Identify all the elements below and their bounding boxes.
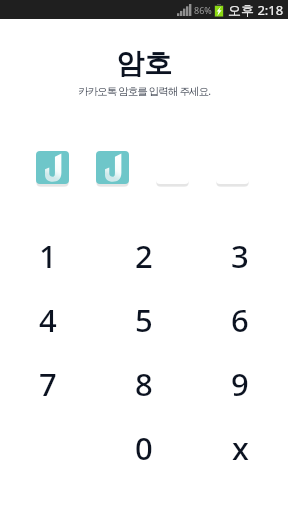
- button[interactable]: 9: [192, 352, 288, 416]
- staticText: 0: [135, 427, 153, 469]
- staticText: 2: [135, 235, 153, 277]
- button[interactable]: 3: [192, 224, 288, 288]
- button[interactable]: Delete: [192, 416, 288, 480]
- staticText: 1: [39, 235, 57, 277]
- button[interactable]: 1: [0, 224, 96, 288]
- staticText: 9: [231, 363, 249, 405]
- staticText: 8: [135, 363, 153, 405]
- button[interactable]: 6: [192, 288, 288, 352]
- staticText: 4: [39, 299, 57, 341]
- button[interactable]: 4: [0, 288, 96, 352]
- staticText: 오후 2:18: [228, 1, 284, 19]
- button[interactable]: 7: [0, 352, 96, 416]
- staticText: 5: [135, 299, 153, 341]
- button[interactable]: 0: [96, 416, 192, 480]
- staticText: 암호: [0, 46, 288, 81]
- button[interactable]: 2: [96, 224, 192, 288]
- staticText: x: [232, 427, 249, 469]
- staticText: 3: [231, 235, 249, 277]
- staticText: 6: [231, 299, 249, 341]
- button[interactable]: 5: [96, 288, 192, 352]
- staticText: 7: [39, 363, 57, 405]
- staticText: 86%: [194, 4, 212, 16]
- staticText: 카카오톡 암호를 입력해 주세요.: [0, 84, 288, 98]
- button[interactable]: 8: [96, 352, 192, 416]
